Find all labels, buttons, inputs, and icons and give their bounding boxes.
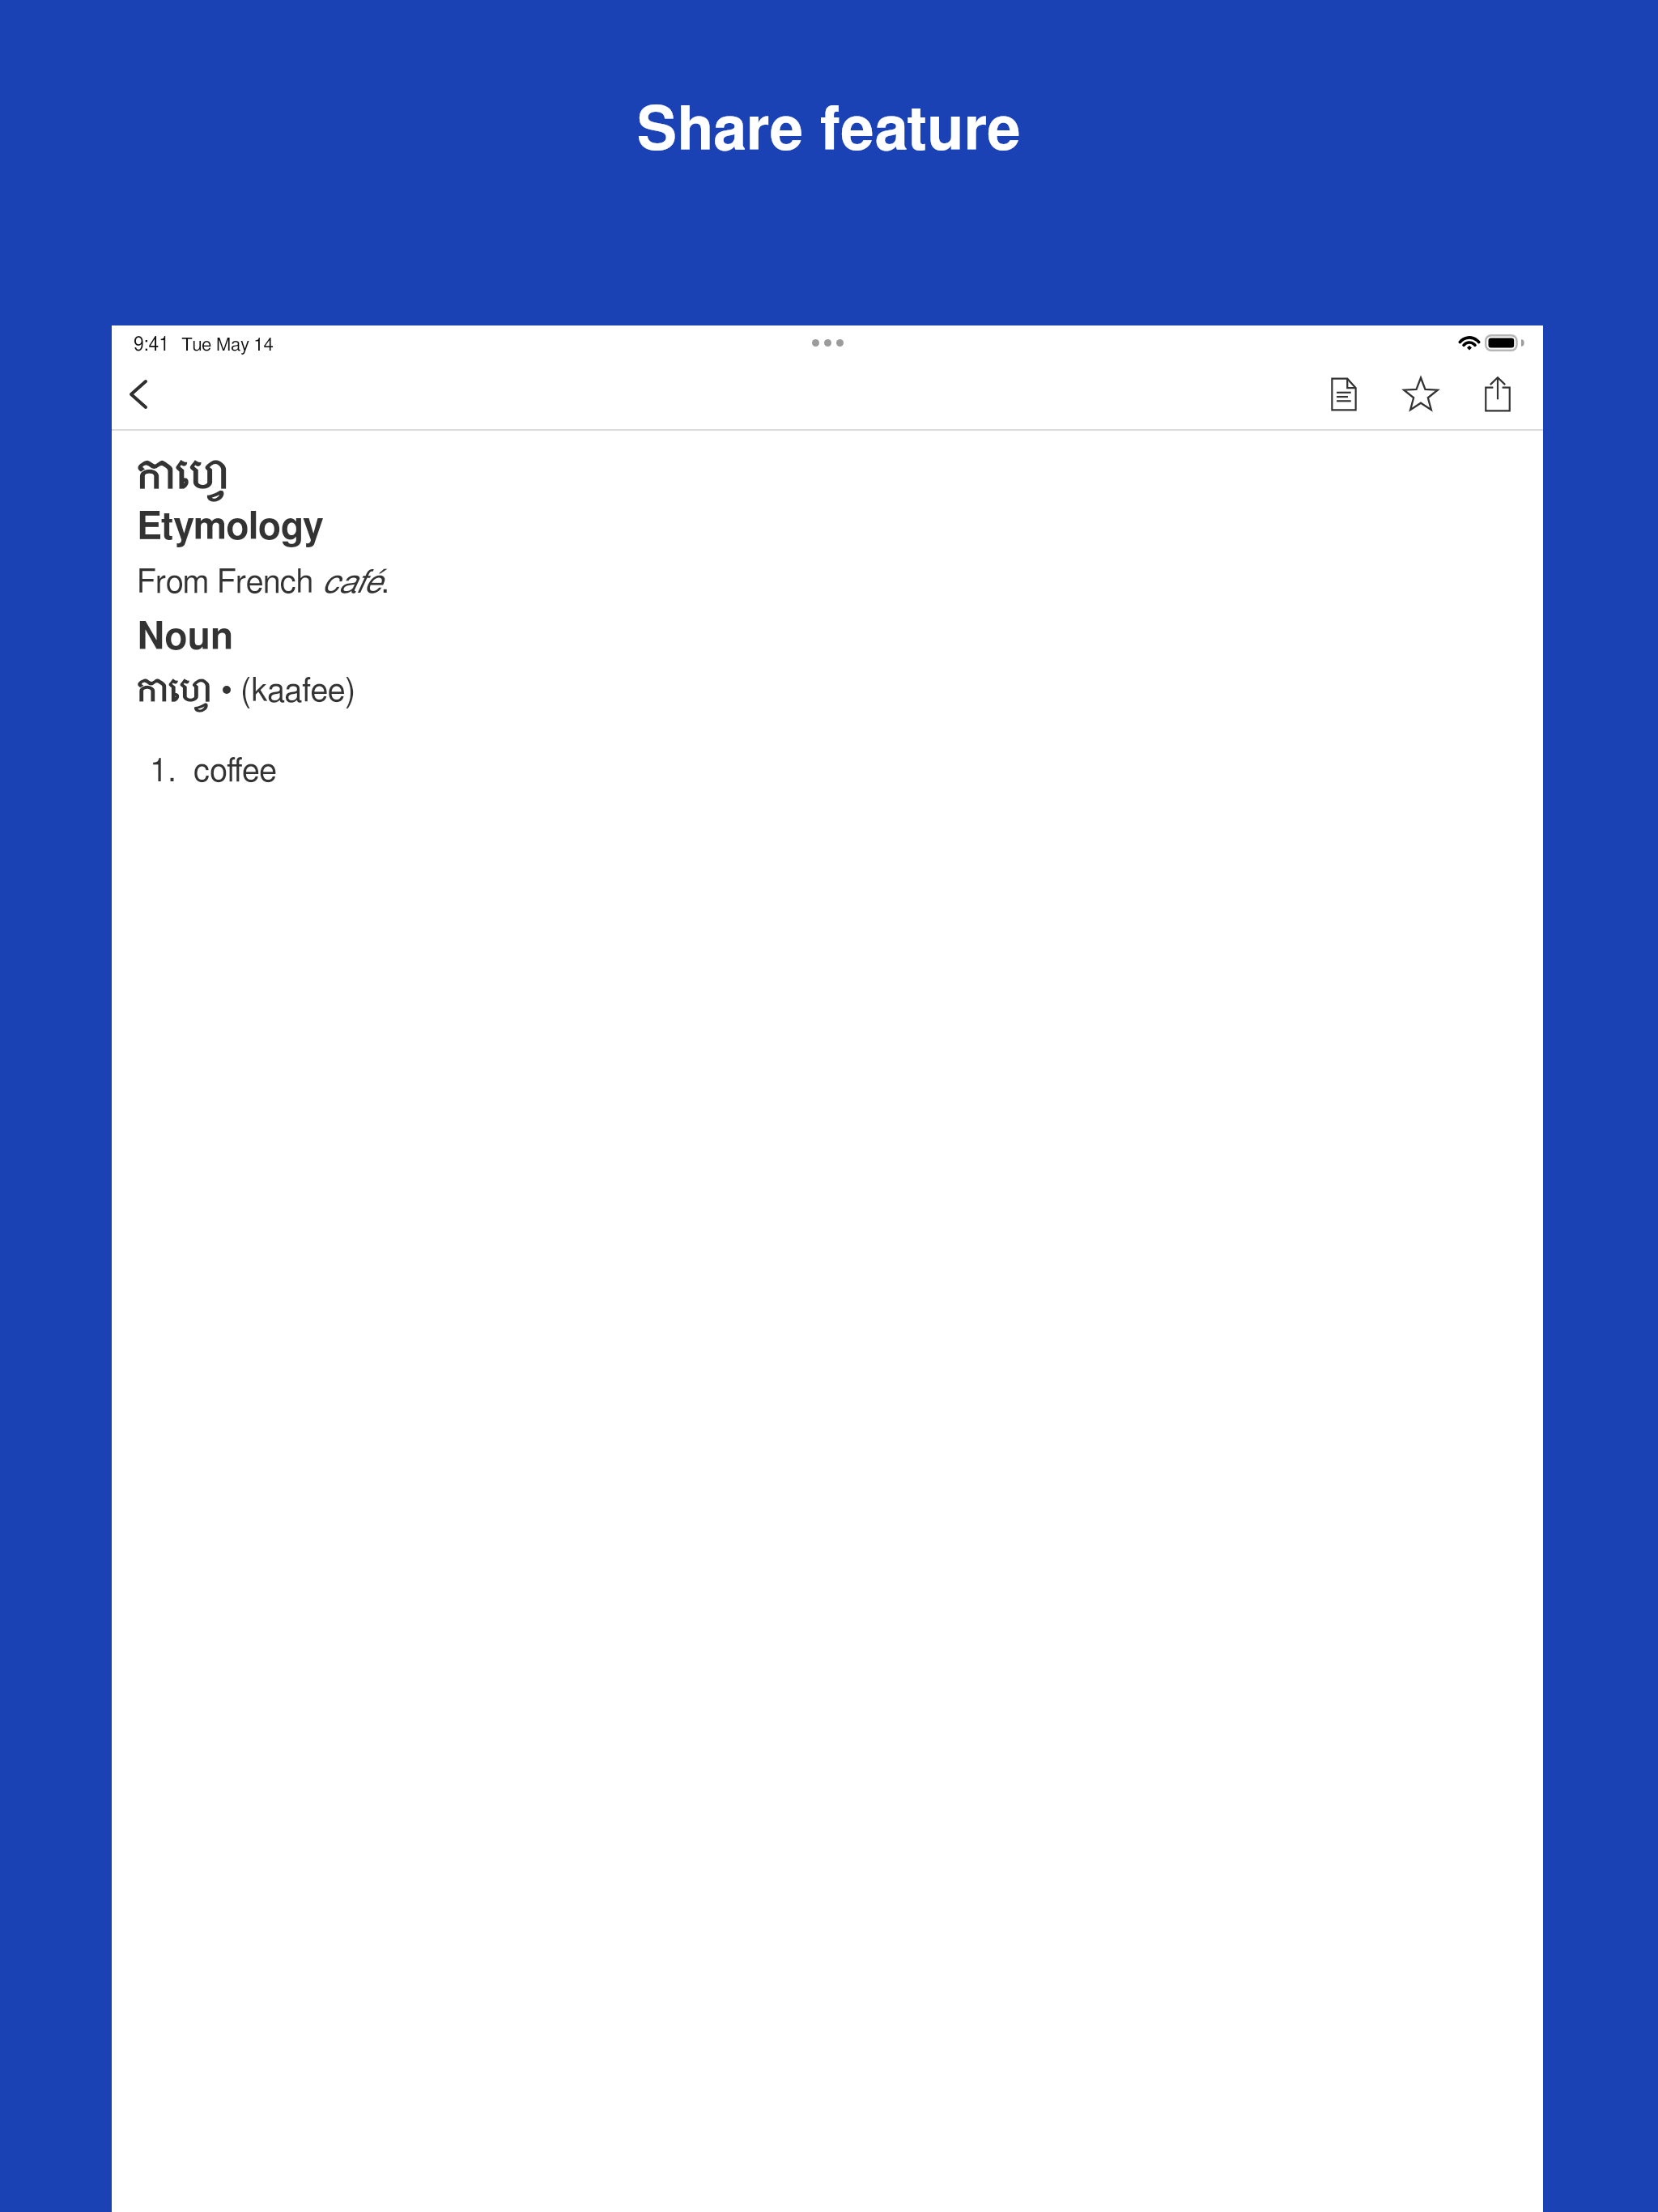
button[interactable]: Add to favourites	[1390, 367, 1452, 422]
staticText: Noun	[137, 619, 234, 657]
staticText: Tue May 14	[181, 336, 274, 354]
staticText: Etymology	[137, 509, 324, 547]
staticText: (kaafee)	[240, 675, 356, 708]
staticText: Share feature	[636, 101, 1022, 161]
button[interactable]: Open document	[1313, 367, 1375, 422]
button[interactable]: Share	[1467, 367, 1528, 422]
button[interactable]: Back	[112, 367, 165, 422]
staticText: កាហ្វេ	[137, 446, 229, 500]
staticText: 9:41	[134, 336, 170, 355]
staticText: From French café.	[137, 567, 389, 599]
staticText: 1.	[150, 755, 176, 788]
staticText: coffee	[193, 755, 277, 788]
staticText: កាហ្វេ	[137, 666, 212, 710]
